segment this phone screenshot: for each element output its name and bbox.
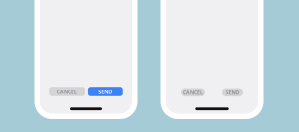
staticText: SEND <box>225 89 239 96</box>
button[interactable]: CANCEL <box>49 87 85 96</box>
button[interactable]: CANCEL <box>181 88 205 96</box>
staticText: CANCEL <box>183 89 203 96</box>
staticText: SEND <box>98 88 112 95</box>
button[interactable]: SEND <box>88 87 123 96</box>
button[interactable]: SEND <box>222 88 243 96</box>
staticText: CANCEL <box>57 88 77 95</box>
